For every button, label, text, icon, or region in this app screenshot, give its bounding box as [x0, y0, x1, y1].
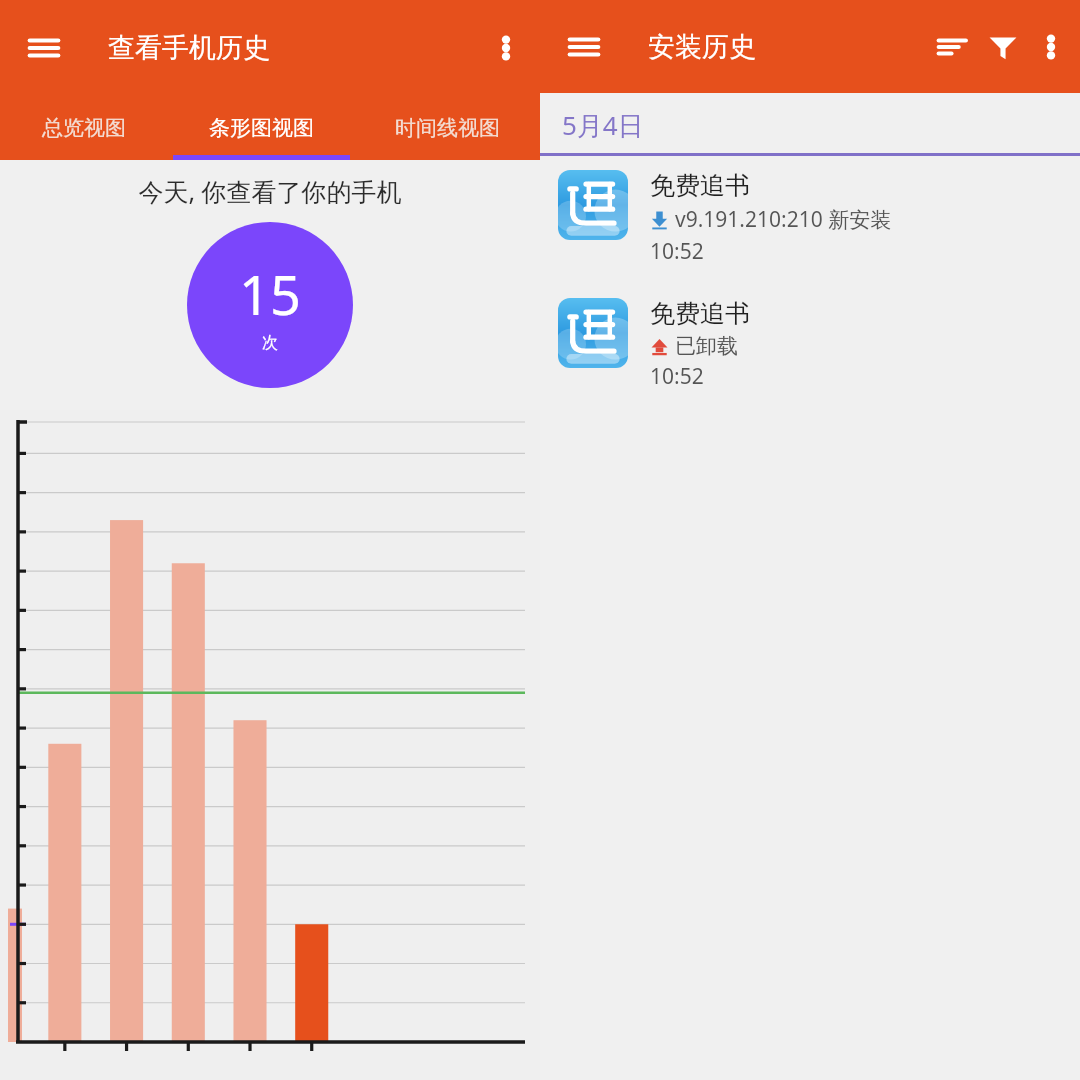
- button[interactable]: Filter: [978, 22, 1028, 72]
- button[interactable]: 总览视图: [0, 95, 168, 160]
- staticText: 15: [239, 257, 301, 331]
- button[interactable]: 5月4日: [540, 93, 1080, 156]
- button[interactable]: 免费追书: [540, 166, 1080, 270]
- staticText: 免费追书: [650, 170, 750, 201]
- button[interactable]: 条形图视图: [168, 95, 354, 160]
- staticText: 次: [262, 333, 278, 353]
- staticText: 10:52: [650, 362, 704, 391]
- staticText: 10:52: [650, 237, 704, 266]
- button[interactable]: Menu: [18, 22, 70, 74]
- button[interactable]: More options: [482, 24, 530, 72]
- button[interactable]: Menu: [558, 21, 610, 73]
- staticText: 免费追书: [650, 298, 750, 329]
- staticText: v9.191.210:210 新安装: [675, 205, 892, 234]
- button[interactable]: 免费追书: [540, 294, 1080, 395]
- button[interactable]: More options: [1028, 24, 1074, 70]
- staticText: 今天, 你查看了你的手机: [0, 174, 540, 208]
- staticText: 条形图视图: [209, 115, 314, 141]
- staticText: 查看手机历史: [108, 31, 270, 65]
- staticText: 5月4日: [562, 107, 644, 143]
- staticText: 总览视图: [42, 115, 126, 141]
- staticText: 已卸载: [675, 333, 738, 359]
- staticText: 安装历史: [648, 30, 756, 64]
- button[interactable]: 15: [187, 222, 353, 388]
- button[interactable]: 时间线视图: [354, 95, 540, 160]
- button[interactable]: Sort: [928, 22, 978, 72]
- staticText: 时间线视图: [395, 115, 500, 141]
